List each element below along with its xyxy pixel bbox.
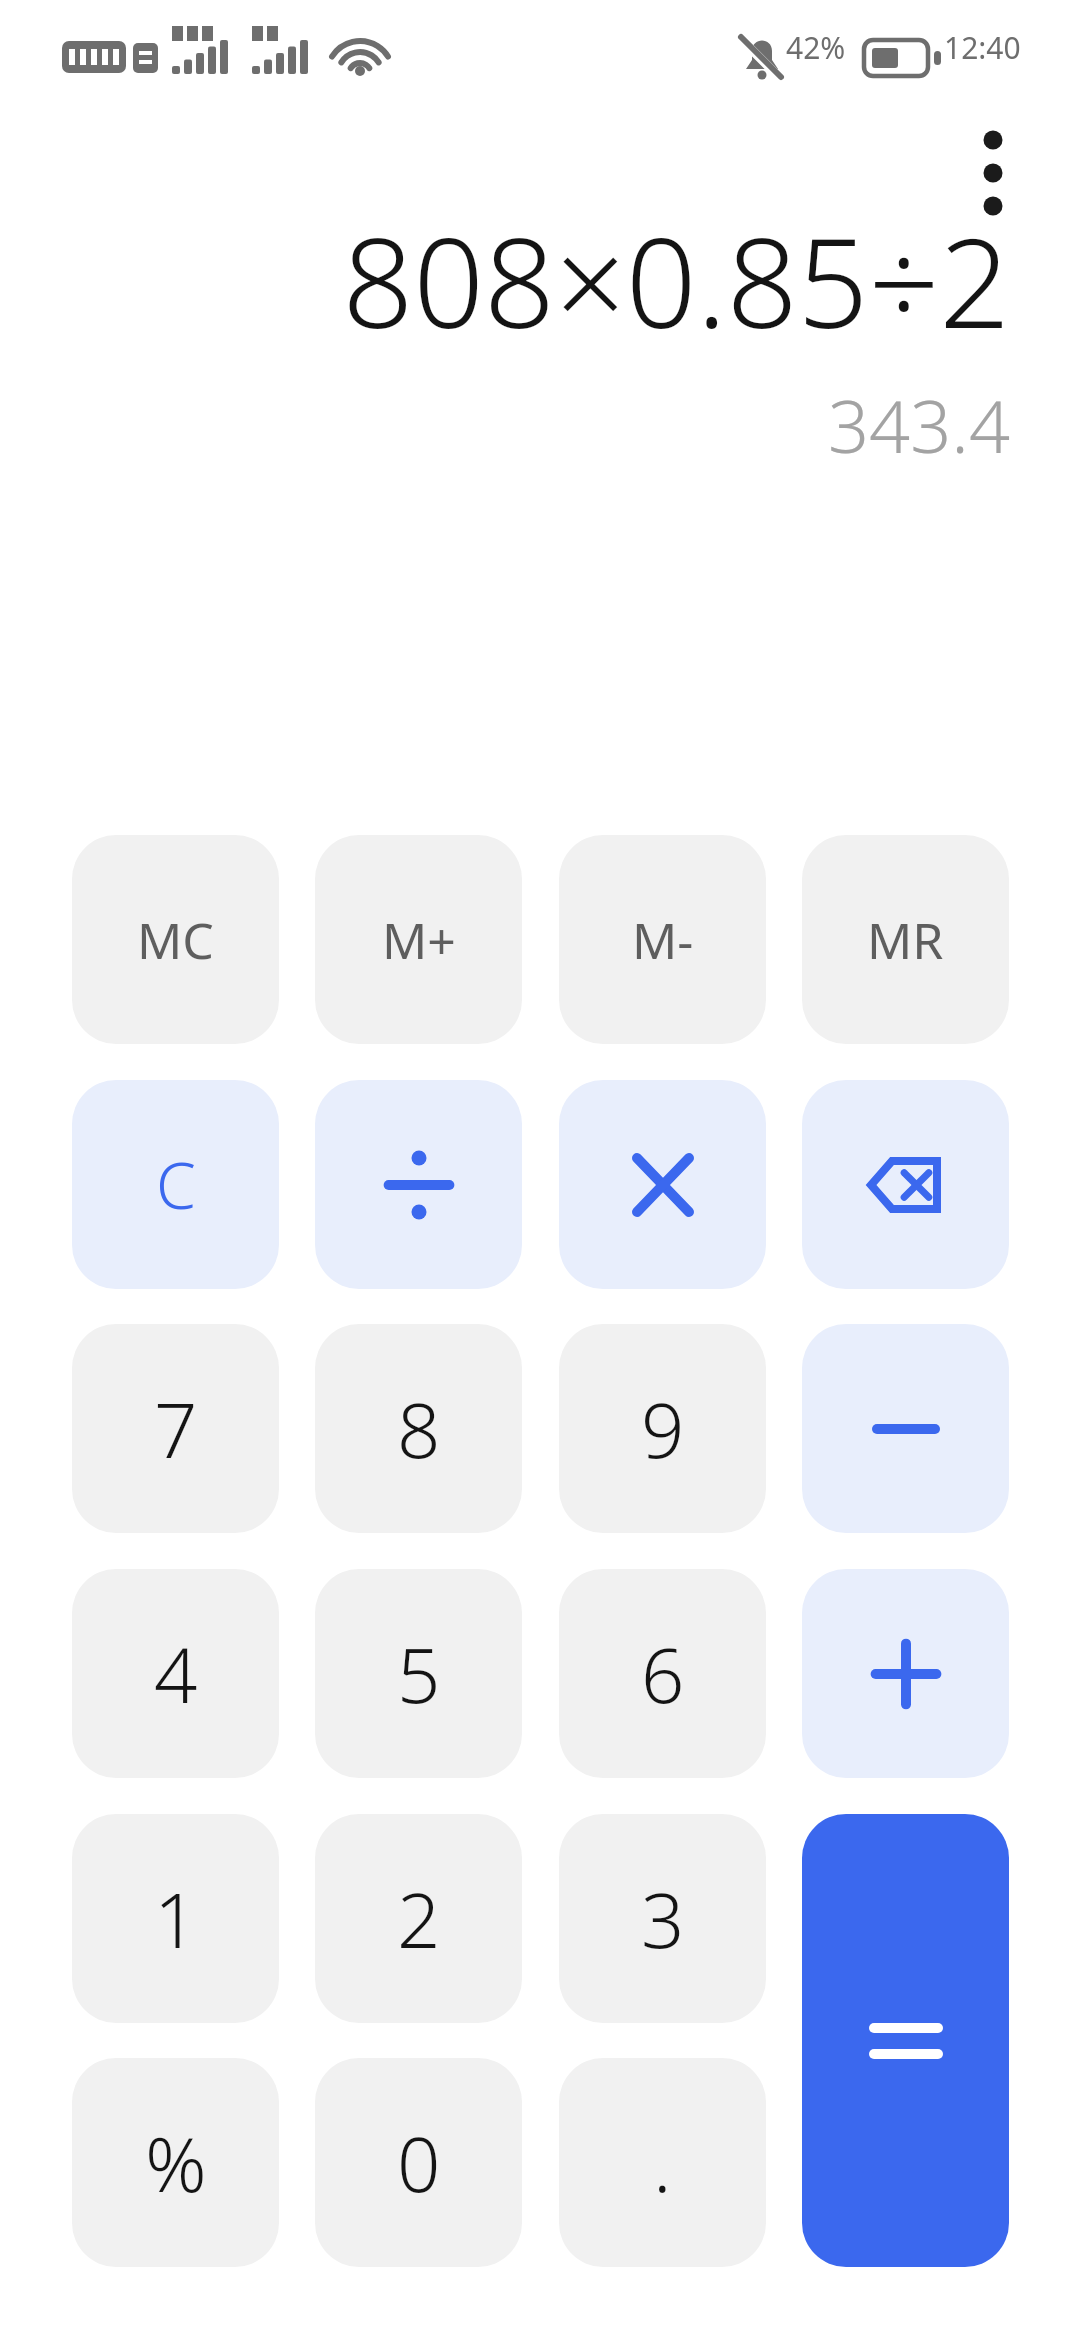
staticText: 7 — [154, 1377, 198, 1481]
button[interactable]: 9 — [559, 1324, 766, 1533]
staticText: 8 — [397, 1377, 441, 1481]
button[interactable]: 8 — [315, 1324, 522, 1533]
button[interactable]: . — [559, 2058, 766, 2267]
staticText: 5 — [397, 1622, 441, 1726]
staticText: 4 — [154, 1622, 198, 1726]
staticText: 42% — [786, 27, 846, 68]
staticText: M- — [632, 906, 694, 974]
button[interactable]: Divide — [315, 1080, 522, 1289]
staticText: C — [156, 1141, 196, 1228]
button[interactable]: More options — [950, 130, 1036, 216]
staticText: 6 — [641, 1622, 685, 1726]
staticText: 1 — [154, 1867, 198, 1971]
button[interactable]: Plus — [802, 1569, 1009, 1778]
button[interactable]: % — [72, 2058, 279, 2267]
staticText: 343.4 — [827, 376, 1010, 474]
staticText: 3 — [641, 1867, 685, 1971]
staticText: MR — [867, 906, 944, 974]
button[interactable]: M+ — [315, 835, 522, 1044]
staticText: MC — [137, 906, 214, 974]
staticText: % — [145, 2111, 207, 2215]
button[interactable]: MR — [802, 835, 1009, 1044]
button[interactable]: 0 — [315, 2058, 522, 2267]
button[interactable]: 4 — [72, 1569, 279, 1778]
button[interactable]: 6 — [559, 1569, 766, 1778]
staticText: 2 — [397, 1867, 441, 1971]
staticText: 0 — [397, 2111, 441, 2215]
button[interactable]: Backspace — [802, 1080, 1009, 1289]
button[interactable]: 5 — [315, 1569, 522, 1778]
button[interactable]: Multiply — [559, 1080, 766, 1289]
button[interactable]: M- — [559, 835, 766, 1044]
button[interactable]: 3 — [559, 1814, 766, 2023]
staticText: M+ — [382, 906, 456, 974]
staticText: . — [653, 2111, 672, 2215]
button[interactable]: 7 — [72, 1324, 279, 1533]
button[interactable]: Clear — [72, 1080, 279, 1289]
button[interactable]: 2 — [315, 1814, 522, 2023]
staticText: 9 — [641, 1377, 685, 1481]
button[interactable]: MC — [72, 835, 279, 1044]
staticText: 808×0.85÷2 — [342, 195, 1010, 364]
button[interactable]: Equals — [802, 1814, 1009, 2267]
staticText: 12:40 — [944, 27, 1021, 68]
button[interactable]: Minus — [802, 1324, 1009, 1533]
button[interactable]: 1 — [72, 1814, 279, 2023]
